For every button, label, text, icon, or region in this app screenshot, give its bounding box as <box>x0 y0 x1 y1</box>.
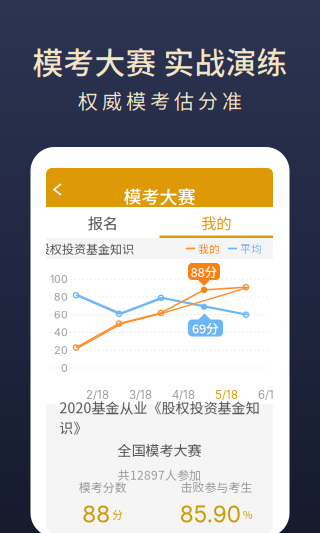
staticText: 共12897人参加 <box>118 466 201 483</box>
staticText: 报名 <box>88 211 118 234</box>
staticText: 2020基金从业《股权投资基金知识》 <box>59 397 259 437</box>
staticText: 80 <box>54 290 68 303</box>
staticText: % <box>243 506 253 522</box>
button[interactable]: 报名 <box>46 207 159 238</box>
staticText: 69分 <box>192 319 219 337</box>
staticText: 模考大赛 <box>123 183 195 209</box>
staticText: 我的 <box>198 241 220 256</box>
staticText: 0 <box>61 361 68 374</box>
staticText: 我的 <box>201 211 231 234</box>
staticText: 模考分数 <box>79 478 127 495</box>
staticText: 平均 <box>240 241 262 256</box>
button[interactable]: 我的 <box>159 207 273 238</box>
staticText: 3/18 <box>129 388 152 402</box>
staticText: 2/18 <box>86 388 109 402</box>
staticText: 全国模考大赛 <box>117 439 201 460</box>
staticText: 60 <box>54 308 68 321</box>
staticText: 100 <box>50 273 68 286</box>
button[interactable]: Back <box>54 184 78 208</box>
staticText: 20 <box>54 344 68 357</box>
staticText: 击败参与考生 <box>180 478 252 495</box>
staticText: 权 威 模 考 估 分 准 <box>78 85 242 114</box>
staticText: 6/18 <box>258 388 281 402</box>
staticText: 4/18 <box>172 388 195 402</box>
staticText: 88 <box>82 500 110 528</box>
staticText: 88分 <box>190 262 217 281</box>
staticText: 40 <box>54 326 68 339</box>
staticText: 模考大赛 实战演练 <box>32 39 287 83</box>
staticText: 股权投资基金知识 <box>38 240 134 257</box>
staticText: 5/18 <box>215 388 238 402</box>
staticText: 分 <box>112 506 123 522</box>
staticText: 85.90 <box>180 500 241 528</box>
